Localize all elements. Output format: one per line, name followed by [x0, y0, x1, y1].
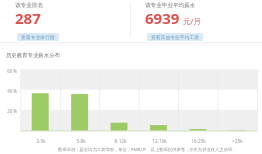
staticText: 2-5k [21, 138, 61, 144]
staticText: >25k [218, 138, 257, 144]
staticText: 该专业排名 [15, 2, 43, 9]
staticText: 查看专业排行榜 [21, 34, 55, 40]
staticText: 20 % [7, 108, 17, 114]
staticText: 12-16k [140, 138, 179, 144]
staticText: 287 [15, 8, 41, 28]
staticText: 8-12k [101, 138, 140, 144]
button[interactable]: 查看专业排行榜 [17, 33, 59, 41]
button[interactable]: 查看其他专业平均工资 [147, 33, 203, 41]
staticText: 元/月 [183, 16, 202, 26]
staticText: 历史教育专业薪水分布 [6, 52, 60, 59]
staticText: 数据说明：薪水均为工资范围，单位：RMB/月。以上数据仅供参考，不作为就业收入之… [58, 146, 258, 152]
staticText: 16-25k [179, 138, 218, 144]
staticText: 该专业毕业平均薪水 [145, 2, 196, 9]
staticText: 6939 [145, 8, 180, 28]
staticText: 查看其他专业平均工资 [151, 34, 199, 40]
staticText: 5-8k [61, 138, 101, 144]
staticText: 40 % [7, 88, 17, 94]
staticText: 60 % [7, 68, 17, 74]
